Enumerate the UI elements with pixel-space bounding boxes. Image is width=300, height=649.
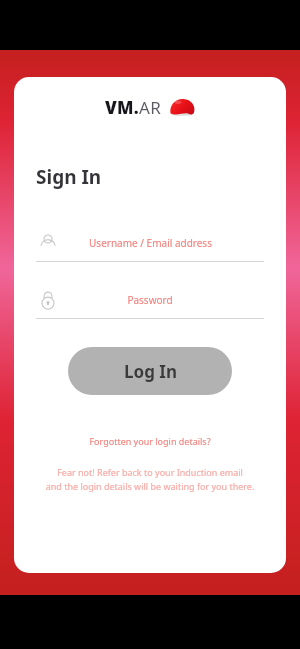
other: Username bbox=[36, 231, 60, 255]
staticText: VM.AR bbox=[105, 96, 162, 119]
button[interactable]: Forgotten your login details? bbox=[81, 432, 219, 450]
staticText: Password bbox=[127, 293, 173, 307]
button[interactable]: Username bbox=[36, 225, 264, 262]
staticText: Forgotten your login details? bbox=[89, 435, 211, 447]
staticText: Log In bbox=[124, 360, 177, 383]
button[interactable]: Log In bbox=[68, 347, 232, 395]
other: Password bbox=[36, 288, 60, 312]
staticText: Sign In bbox=[36, 164, 102, 190]
button[interactable]: Password bbox=[36, 282, 264, 319]
staticText: Username / Email address bbox=[89, 236, 212, 250]
staticText: Fear not! Refer back to your Induction e… bbox=[28, 466, 272, 493]
